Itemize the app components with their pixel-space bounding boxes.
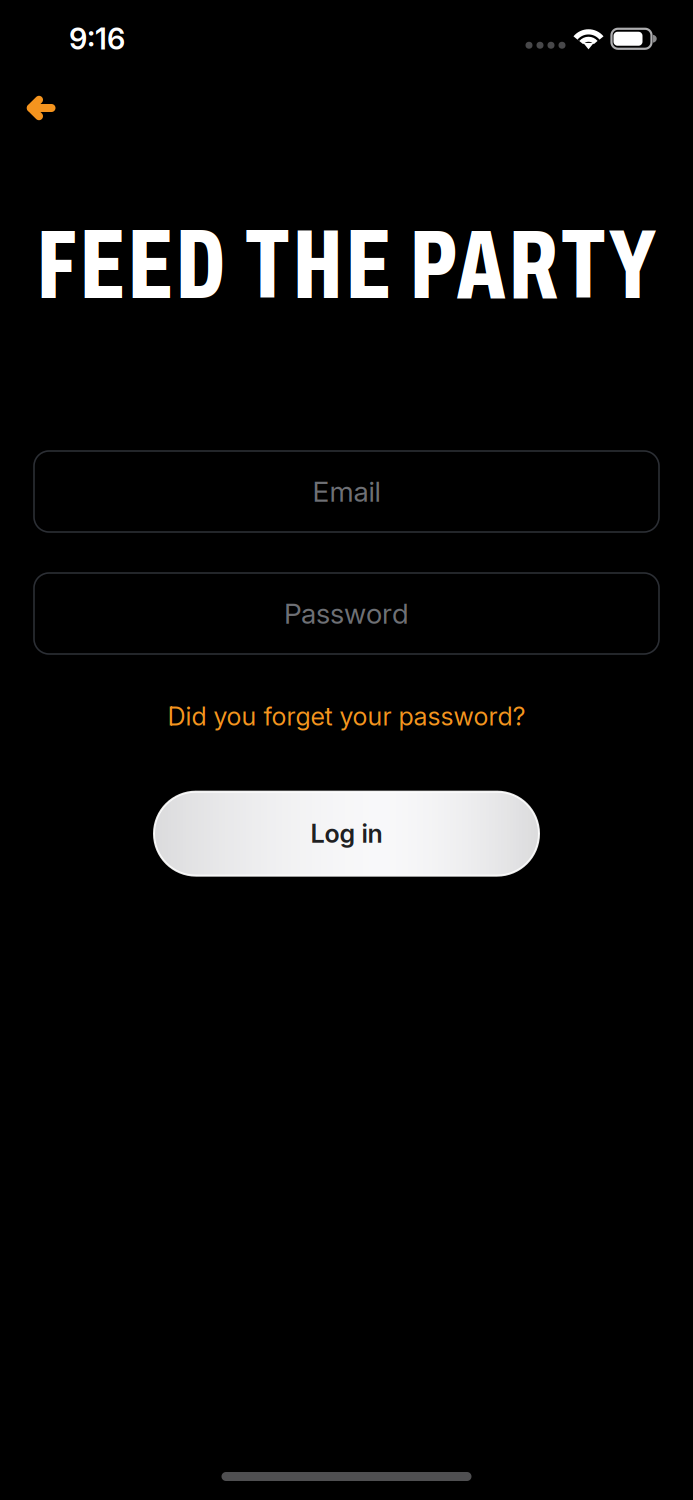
button[interactable]: Back bbox=[0, 72, 74, 123]
staticText: Did you forget your password? bbox=[167, 701, 525, 732]
staticText: Email bbox=[312, 475, 380, 508]
staticText: FEED THE PARTY bbox=[37, 211, 656, 319]
staticText: Log in bbox=[310, 818, 382, 849]
staticText: Password bbox=[284, 597, 409, 630]
button[interactable]: Log in bbox=[154, 792, 539, 876]
staticText: 9:16 bbox=[69, 21, 125, 56]
button[interactable]: Did you forget your password? bbox=[153, 692, 539, 741]
